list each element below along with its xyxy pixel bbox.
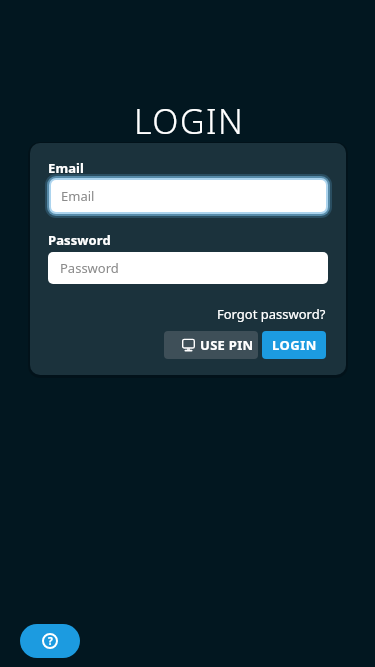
staticText: Email [61,187,95,205]
staticText: ? [48,634,53,648]
button[interactable]: LOGIN [262,331,326,359]
button[interactable]: ? [20,624,80,658]
button[interactable]: Password [48,252,328,284]
staticText: Forgot password? [217,305,326,323]
staticText: Email [48,159,85,177]
staticText: Password [60,259,119,277]
staticText: LOGIN [272,336,317,354]
button[interactable]: Forgot password? [217,305,326,323]
staticText: USE PIN [200,336,254,354]
staticText: Password [48,231,111,249]
button[interactable]: Email [51,180,326,212]
button[interactable]: USE PIN [164,331,258,359]
staticText: LOGIN [134,98,245,144]
